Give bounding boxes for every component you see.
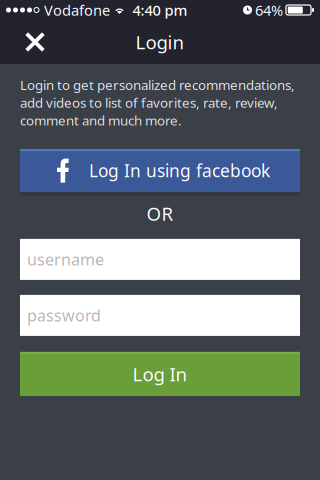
staticText: password xyxy=(27,305,101,326)
staticText: Login xyxy=(135,30,184,54)
staticText: Login to get personalized recommendation… xyxy=(20,76,295,129)
staticText: username xyxy=(27,249,104,270)
button[interactable]: Log In xyxy=(20,352,300,396)
staticText: Vodafone xyxy=(44,0,110,20)
button[interactable]: Close xyxy=(13,20,57,64)
staticText: Log In xyxy=(132,361,187,386)
button[interactable]: password xyxy=(20,295,300,336)
staticText: 4:40 pm xyxy=(132,0,187,20)
staticText: OR xyxy=(146,201,173,226)
staticText: Log In using facebook xyxy=(89,159,270,182)
staticText: 64% xyxy=(255,0,283,20)
button[interactable]: Log In using facebook xyxy=(20,149,300,192)
button[interactable]: username xyxy=(20,239,300,280)
